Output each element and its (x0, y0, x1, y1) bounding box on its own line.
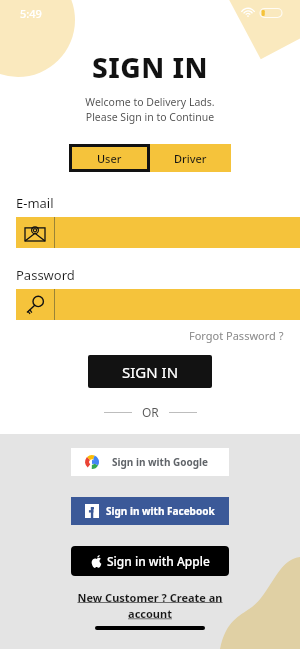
button[interactable]: Sign in with Apple (71, 546, 229, 576)
staticText: 5:49 (20, 6, 42, 21)
button[interactable]: User (69, 144, 150, 172)
button[interactable]: Forgot Password ? (189, 328, 284, 343)
button[interactable]: Sign in with Facebook (71, 497, 229, 525)
button[interactable]: New Customer ? Create an account (48, 590, 252, 621)
staticText: SIGN IN (122, 362, 179, 382)
staticText: SIGN IN (0, 48, 300, 86)
staticText: Sign in with Google (112, 455, 209, 469)
staticText: Welcome to Delivery Lads. Please Sign in… (0, 95, 300, 124)
staticText: E-mail (16, 194, 54, 212)
staticText: Sign in with Facebook (106, 504, 215, 518)
button[interactable] (16, 217, 300, 248)
staticText: Sign in with Apple (107, 553, 210, 569)
button[interactable]: SIGN IN (88, 355, 212, 388)
staticText: User (97, 151, 122, 166)
button[interactable]: Sign in with Google (71, 448, 229, 476)
button[interactable] (16, 289, 300, 320)
button[interactable]: Driver (150, 144, 231, 172)
staticText: OR (142, 404, 159, 420)
staticText: Driver (174, 151, 207, 166)
staticText: Password (16, 266, 75, 284)
